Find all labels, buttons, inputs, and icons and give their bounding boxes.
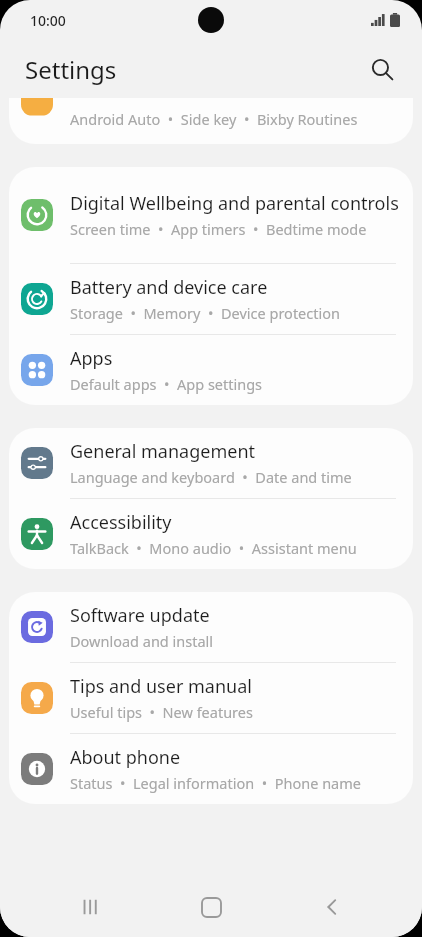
staticText: Digital Wellbeing and parental controls [70, 191, 399, 216]
button[interactable]: Accessibility [9, 499, 413, 569]
button[interactable]: Digital Wellbeing and parental controls [9, 167, 413, 263]
staticText: Status • Legal information • Phone name [70, 773, 361, 793]
button[interactable]: Tips and user manual [9, 663, 413, 733]
staticText: Android Auto • Side key • Bixby Routines [70, 109, 358, 129]
staticText: Useful tips • New features [70, 702, 253, 722]
staticText: Download and install [70, 631, 214, 651]
staticText: Screen time • App timers • Bedtime mode [70, 219, 367, 239]
button[interactable]: General management [9, 428, 413, 498]
staticText: Default apps • App settings [70, 374, 263, 394]
staticText: 10:00 [30, 11, 66, 30]
staticText: TalkBack • Mono audio • Assistant menu [70, 538, 357, 558]
button[interactable]: About phone [9, 734, 413, 804]
button[interactable]: Back [302, 877, 362, 937]
button[interactable]: Apps [9, 335, 413, 405]
staticText: Battery and device care [70, 275, 268, 300]
button[interactable]: Battery and device care [9, 264, 413, 334]
staticText: Storage • Memory • Device protection [70, 303, 340, 323]
staticText: Apps [70, 346, 113, 371]
button[interactable]: Home [181, 877, 241, 937]
staticText: Accessibility [70, 510, 172, 535]
staticText: Software update [70, 603, 210, 628]
button[interactable]: Search [360, 47, 404, 91]
button[interactable]: Android Auto • Side key • Bixby Routines [9, 98, 413, 144]
staticText: General management [70, 439, 256, 464]
button[interactable]: Recent apps [61, 877, 121, 937]
staticText: About phone [70, 745, 181, 770]
staticText: Tips and user manual [70, 674, 252, 699]
staticText: Language and keyboard • Date and time [70, 467, 352, 487]
button[interactable]: Software update [9, 592, 413, 662]
staticText: Settings [25, 53, 117, 86]
